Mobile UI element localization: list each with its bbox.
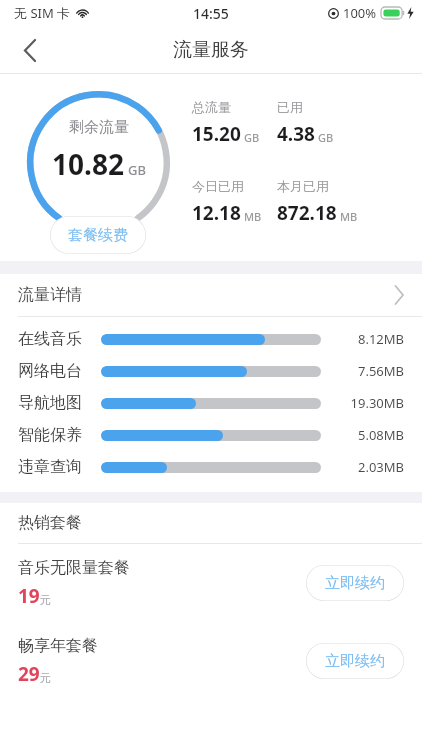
staticText: 剩余流量: [69, 118, 129, 137]
button[interactable]: 智能保养: [0, 419, 422, 451]
staticText: 15.20: [192, 121, 241, 147]
staticText: MB: [244, 209, 262, 224]
button[interactable]: 套餐续费: [50, 216, 146, 254]
staticText: 100%: [343, 4, 377, 22]
staticText: GB: [318, 130, 334, 145]
staticText: 10.82: [52, 145, 124, 183]
staticText: 8.12MB: [342, 330, 404, 348]
staticText: 无 SIM 卡: [14, 4, 71, 22]
staticText: 今日已用: [192, 178, 244, 194]
staticText: 2.03MB: [342, 458, 404, 476]
staticText: 14:55: [193, 4, 229, 23]
button[interactable]: 违章查询: [0, 451, 422, 483]
staticText: 12.18: [192, 200, 241, 226]
staticText: 4.38: [277, 121, 315, 147]
button[interactable]: 在线音乐: [0, 323, 422, 355]
staticText: 套餐续费: [68, 226, 128, 245]
button[interactable]: 导航地图: [0, 387, 422, 419]
button[interactable]: Back: [8, 28, 52, 72]
staticText: 流量服务: [173, 38, 249, 62]
staticText: 在线音乐: [18, 329, 82, 349]
staticText: 872.18: [277, 200, 337, 226]
staticText: 总流量: [192, 99, 231, 115]
staticText: 违章查询: [18, 457, 82, 477]
button[interactable]: 流量详情: [0, 274, 422, 316]
staticText: 畅享年套餐: [18, 636, 98, 656]
staticText: 立即续约: [325, 574, 385, 593]
staticText: 导航地图: [18, 393, 82, 413]
staticText: 立即续约: [325, 652, 385, 671]
staticText: 19: [18, 583, 40, 609]
staticText: 网络电台: [18, 361, 82, 381]
staticText: 5.08MB: [342, 426, 404, 444]
staticText: 音乐无限量套餐: [18, 558, 130, 578]
staticText: 智能保养: [18, 425, 82, 445]
staticText: GB: [244, 130, 260, 145]
staticText: 元: [40, 593, 51, 607]
staticText: 元: [40, 671, 51, 685]
staticText: MB: [340, 209, 358, 224]
button[interactable]: 立即续约: [306, 643, 404, 679]
staticText: 热销套餐: [18, 513, 82, 533]
staticText: GB: [128, 161, 146, 179]
staticText: 7.56MB: [342, 362, 404, 380]
staticText: 29: [18, 661, 40, 687]
button[interactable]: 立即续约: [306, 565, 404, 601]
button[interactable]: 网络电台: [0, 355, 422, 387]
staticText: 本月已用: [277, 178, 329, 194]
staticText: 流量详情: [18, 285, 82, 305]
staticText: 19.30MB: [342, 394, 404, 412]
staticText: 已用: [277, 99, 303, 115]
